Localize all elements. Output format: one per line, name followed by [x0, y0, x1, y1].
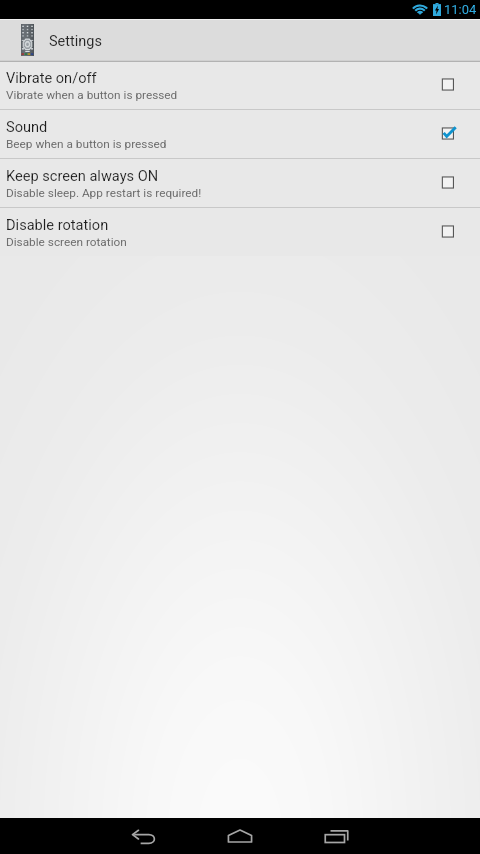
staticText: Vibrate when a button is pressed: [6, 88, 178, 102]
button[interactable]: Settings: [0, 19, 480, 62]
staticText: Disable rotation: [6, 216, 109, 233]
staticText: Sound: [6, 118, 48, 135]
button[interactable]: Recent apps: [288, 818, 384, 854]
button[interactable]: Sound: [0, 110, 480, 158]
button[interactable]: Back: [96, 818, 192, 854]
button[interactable]: Disable rotation: [0, 208, 480, 256]
button[interactable]: Keep screen always ON: [0, 159, 480, 207]
button[interactable]: Home: [192, 818, 288, 854]
staticText: Beep when a button is pressed: [6, 137, 167, 151]
staticText: Disable screen rotation: [6, 235, 127, 249]
staticText: Disable sleep. App restart is required!: [6, 186, 202, 200]
staticText: 11:04: [444, 2, 477, 17]
staticText: Keep screen always ON: [6, 167, 159, 184]
staticText: Settings: [49, 33, 102, 50]
button[interactable]: Vibrate on/off: [0, 62, 480, 109]
staticText: Vibrate on/off: [6, 69, 97, 86]
